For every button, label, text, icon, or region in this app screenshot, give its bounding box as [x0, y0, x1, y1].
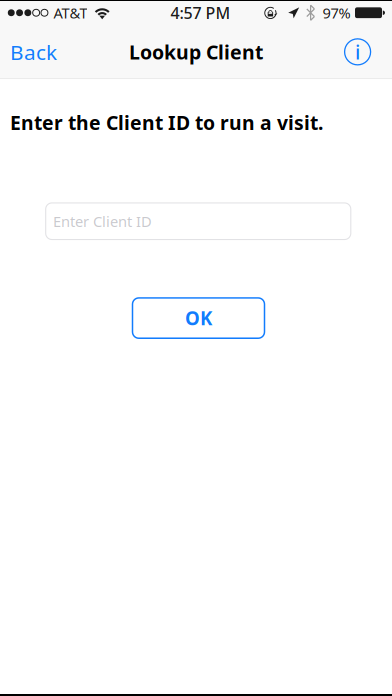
- staticText: i: [355, 39, 360, 65]
- staticText: Enter the Client ID to run a visit.: [10, 109, 323, 136]
- button[interactable]: Back: [0, 28, 67, 76]
- staticText: 97%: [322, 3, 350, 22]
- staticText: Back: [10, 38, 57, 66]
- button[interactable]: Enter Client ID: [0, 203, 392, 239]
- staticText: Lookup Client: [129, 39, 263, 65]
- staticText: 4:57 PM: [170, 2, 230, 23]
- staticText: Enter Client ID: [53, 211, 152, 231]
- button[interactable]: OK: [132, 298, 264, 338]
- staticText: OK: [185, 306, 212, 330]
- staticText: AT&T: [53, 3, 87, 22]
- button[interactable]: Info: [335, 33, 392, 71]
